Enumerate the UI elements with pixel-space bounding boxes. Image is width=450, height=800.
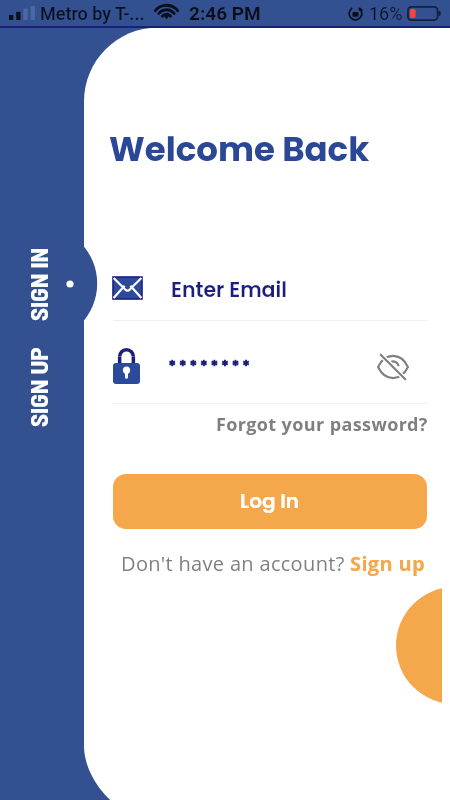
- button[interactable]: Show password: [375, 349, 411, 385]
- staticText: SIGN IN: [23, 247, 53, 321]
- staticText: Enter Email: [171, 275, 287, 304]
- staticText: SIGN UP: [23, 347, 53, 427]
- staticText: Metro by T-...: [40, 3, 145, 24]
- button[interactable]: SIGN IN: [22, 219, 54, 349]
- button[interactable]: Forgot your password?: [113, 411, 428, 437]
- staticText: 16%: [369, 3, 403, 24]
- staticText: 2:46 PM: [189, 2, 261, 24]
- button[interactable]: SIGN UP: [22, 322, 54, 452]
- button[interactable]: Enter Email: [113, 266, 428, 314]
- staticText: Forgot your password?: [216, 412, 428, 437]
- staticText: Log In: [240, 487, 300, 515]
- button[interactable]: Log In: [113, 474, 427, 529]
- staticText: Don't have an account? Sign up: [121, 550, 425, 576]
- button[interactable]: [113, 344, 428, 396]
- button[interactable]: Don't have an account? Sign up: [115, 550, 430, 576]
- staticText: Welcome Back: [109, 125, 370, 173]
